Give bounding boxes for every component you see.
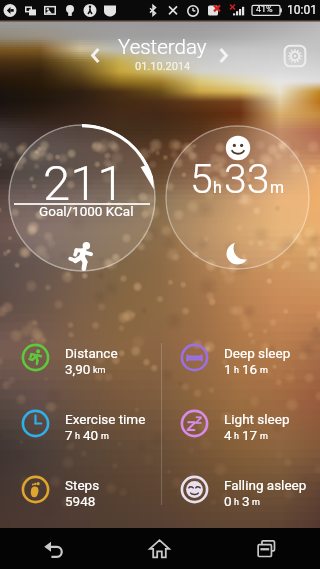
staticText: h <box>234 497 239 508</box>
staticText: 3 <box>242 493 250 509</box>
staticText: Deep sleep <box>224 345 291 361</box>
button[interactable]: Previous day <box>81 41 109 69</box>
staticText: m <box>270 178 285 197</box>
staticText: 16 <box>242 361 258 377</box>
staticText: 3,90 <box>65 361 91 377</box>
staticText: 0 <box>224 493 232 509</box>
button[interactable]: Recent apps <box>213 528 320 569</box>
staticText: 10:01 <box>287 3 317 17</box>
button[interactable]: Exercise time <box>0 390 160 456</box>
button[interactable]: 5 <box>165 125 310 270</box>
staticText: h <box>234 365 239 376</box>
button[interactable]: Deep sleep <box>160 324 320 390</box>
button[interactable]: Distance <box>0 324 160 390</box>
staticText: 1 <box>224 361 232 377</box>
staticText: 41% <box>256 4 273 15</box>
staticText: 01.10.2014 <box>135 60 191 73</box>
button[interactable]: 211 <box>8 124 156 272</box>
staticText: m <box>252 497 260 508</box>
button[interactable]: Home <box>106 528 213 569</box>
staticText: m <box>260 431 268 442</box>
staticText: 17 <box>242 427 258 443</box>
staticText: Goal/1000 KCal <box>39 203 134 219</box>
staticText: km <box>93 365 106 376</box>
staticText: Yesterday <box>118 35 207 59</box>
staticText: 211 <box>43 155 125 212</box>
button[interactable]: Settings <box>281 42 308 69</box>
button[interactable]: Back <box>0 528 106 569</box>
button[interactable]: Falling asleep <box>160 456 320 522</box>
staticText: 40 <box>83 427 99 443</box>
staticText: Light sleep <box>224 411 290 427</box>
staticText: h <box>75 431 80 442</box>
staticText: Exercise time <box>65 411 146 427</box>
staticText: m <box>260 365 268 376</box>
staticText: m <box>101 431 109 442</box>
button[interactable]: Steps <box>0 456 160 522</box>
staticText: 33 <box>224 155 270 203</box>
staticText: 5948 <box>65 493 96 509</box>
staticText: h <box>213 178 222 197</box>
button[interactable]: Light sleep <box>160 390 320 456</box>
staticText: Falling asleep <box>224 477 307 493</box>
staticText: 5 <box>190 155 213 203</box>
staticText: h <box>234 431 239 442</box>
staticText: 7 <box>65 427 73 443</box>
staticText: 4 <box>224 427 232 443</box>
staticText: Distance <box>65 345 118 361</box>
button[interactable]: Next day <box>209 41 237 69</box>
staticText: Steps <box>65 477 100 493</box>
